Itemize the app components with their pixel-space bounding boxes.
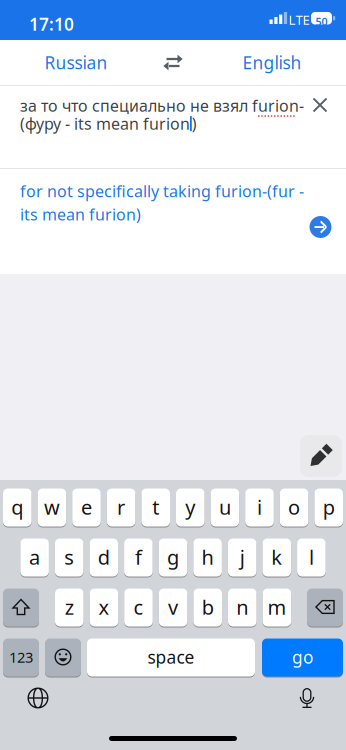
staticText: o <box>288 494 300 520</box>
button[interactable]: z <box>55 588 84 627</box>
staticText: l <box>309 544 314 570</box>
button[interactable]: Delete <box>307 588 343 627</box>
button[interactable]: p <box>314 488 343 527</box>
staticText: b <box>202 594 214 620</box>
staticText: e <box>81 494 92 520</box>
staticText: n <box>236 594 248 620</box>
staticText: h <box>202 544 214 570</box>
button[interactable]: i <box>245 488 274 527</box>
button[interactable]: h <box>193 538 222 577</box>
button[interactable]: 123 <box>3 638 39 677</box>
button[interactable]: c <box>124 588 153 627</box>
staticText: (фуру - its mean furion <box>20 113 190 134</box>
button[interactable]: x <box>90 588 118 627</box>
staticText: x <box>98 594 109 620</box>
staticText: d <box>98 544 110 570</box>
button[interactable]: Clear text <box>300 85 340 125</box>
button[interactable]: b <box>193 588 222 627</box>
staticText: go <box>292 645 313 668</box>
staticText: q <box>11 494 23 520</box>
button[interactable]: t <box>141 488 170 527</box>
button[interactable]: o <box>280 488 308 527</box>
staticText: z <box>65 594 74 620</box>
staticText: i <box>257 494 262 520</box>
staticText: w <box>44 494 60 520</box>
staticText: c <box>133 594 143 620</box>
button[interactable]: k <box>262 538 291 577</box>
button[interactable]: e <box>72 488 101 527</box>
button[interactable]: r <box>107 488 135 527</box>
button[interactable]: d <box>89 538 118 577</box>
button[interactable]: Shift <box>3 588 39 627</box>
staticText: за то что специально не взял <box>20 95 252 116</box>
button[interactable]: u <box>211 488 239 527</box>
button[interactable]: Swap languages <box>153 40 193 85</box>
staticText: m <box>267 594 286 620</box>
button[interactable]: space <box>87 638 255 677</box>
staticText: f <box>135 544 142 570</box>
staticText: ) <box>192 113 197 134</box>
staticText: for not specifically taking furion-(fur … <box>20 180 304 202</box>
staticText: r <box>117 494 125 520</box>
button[interactable]: English <box>217 40 327 85</box>
button[interactable]: Dictation <box>287 678 327 718</box>
button[interactable]: Open translation <box>309 216 331 238</box>
staticText: y <box>185 494 195 520</box>
staticText: LTE <box>288 11 309 28</box>
staticText: k <box>271 544 282 570</box>
button[interactable]: a <box>20 538 49 577</box>
button[interactable]: Russian <box>21 40 131 85</box>
staticText: t <box>152 494 159 520</box>
button[interactable]: s <box>55 538 83 577</box>
staticText: v <box>168 594 178 620</box>
button[interactable]: g <box>159 538 187 577</box>
staticText: English <box>242 51 301 74</box>
staticText: a <box>29 544 40 570</box>
staticText: g <box>167 544 179 570</box>
staticText: s <box>64 544 74 570</box>
staticText: 50 <box>315 14 327 29</box>
button[interactable]: v <box>159 588 187 627</box>
button[interactable]: m <box>263 588 291 627</box>
staticText: its mean furion) <box>20 204 141 225</box>
button[interactable]: Handwriting input <box>300 435 342 477</box>
staticText: space <box>147 645 194 668</box>
staticText: u <box>219 494 231 520</box>
button[interactable]: w <box>38 488 66 527</box>
button[interactable]: n <box>228 588 257 627</box>
staticText: 17:10 <box>29 12 74 35</box>
button[interactable]: Emoji <box>45 638 81 677</box>
staticText: 123 <box>9 647 33 667</box>
button[interactable]: l <box>297 538 326 577</box>
button[interactable]: j <box>228 538 256 577</box>
button[interactable]: y <box>176 488 205 527</box>
button[interactable]: go <box>262 638 343 677</box>
staticText: p <box>323 494 335 520</box>
staticText: j <box>240 544 245 570</box>
staticText: furion- <box>252 95 304 116</box>
button[interactable]: f <box>124 538 153 577</box>
button[interactable]: q <box>3 488 32 527</box>
button[interactable]: Next keyboard <box>18 678 58 718</box>
staticText: Russian <box>44 51 107 74</box>
